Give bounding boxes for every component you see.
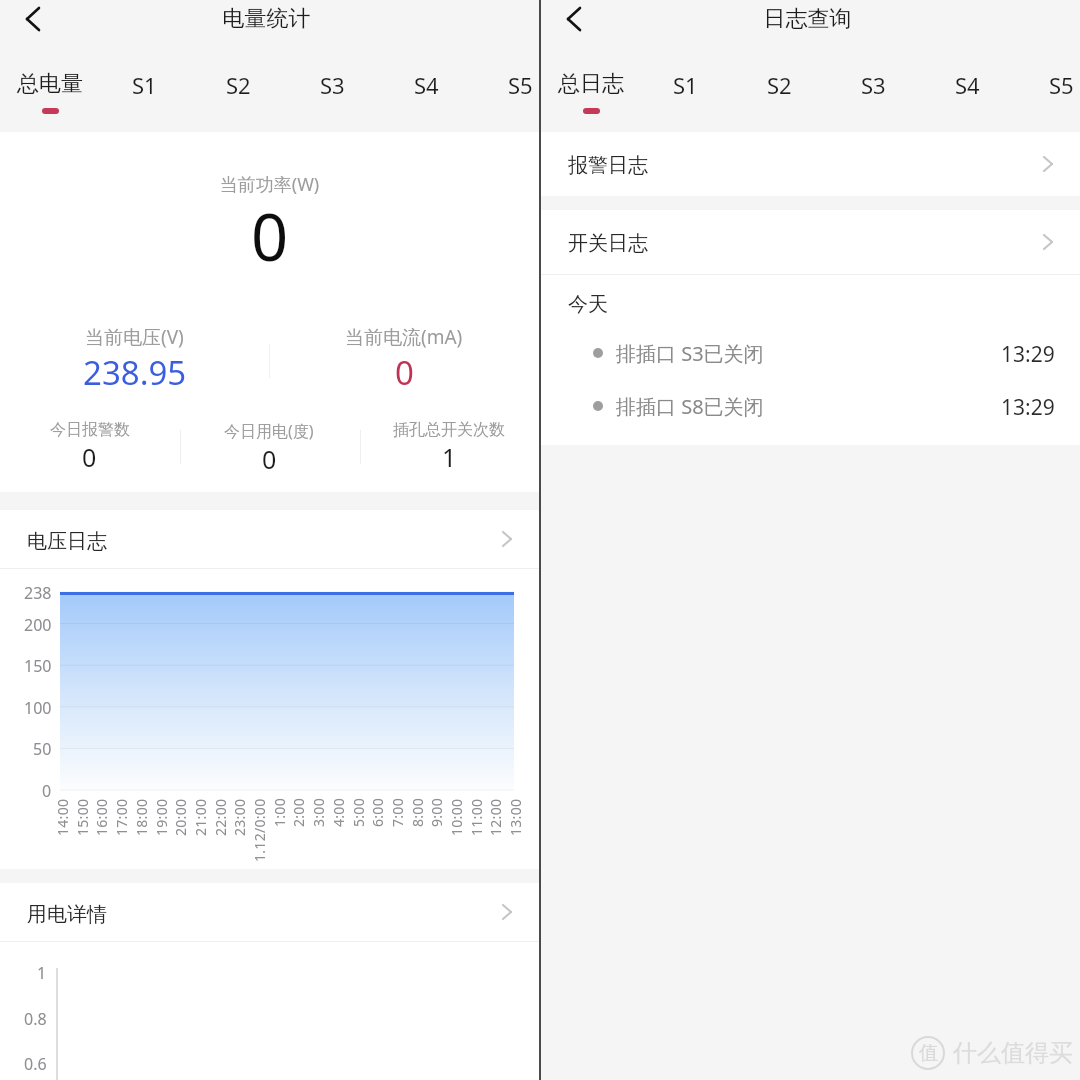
button[interactable]: 电压日志 — [0, 510, 539, 568]
staticText: 16:00 — [92, 798, 111, 836]
button[interactable]: 排插口 S8已关闭 — [541, 393, 1080, 419]
staticText: 7:00 — [388, 798, 407, 827]
staticText: S4 — [414, 70, 439, 100]
staticText: 2:00 — [289, 798, 308, 827]
staticText: 0.6 — [24, 1053, 47, 1075]
button[interactable]: S5 — [1014, 70, 1080, 126]
staticText: 排插口 S8已关闭 — [616, 393, 764, 419]
staticText: 0 — [262, 442, 277, 476]
staticText: 3:00 — [309, 798, 328, 827]
button[interactable]: 用电详情 — [0, 883, 539, 941]
button[interactable]: 报警日志 — [541, 132, 1080, 196]
staticText: 18:00 — [132, 798, 151, 836]
staticText: 14:00 — [53, 798, 72, 836]
button[interactable]: Back — [555, 0, 593, 38]
staticText: 19:00 — [152, 798, 171, 836]
staticText: S2 — [767, 70, 792, 100]
button[interactable]: S1 — [97, 70, 191, 126]
staticText: 8:00 — [408, 798, 427, 827]
staticText: 总日志 — [558, 70, 624, 98]
staticText: 11:00 — [467, 798, 486, 836]
staticText: 238.95 — [83, 350, 187, 395]
staticText: S5 — [508, 70, 533, 100]
button[interactable]: S4 — [379, 70, 473, 126]
staticText: 0 — [0, 192, 539, 281]
staticText: 电压日志 — [27, 529, 107, 554]
staticText: 15:00 — [73, 798, 92, 836]
staticText: 今日用电(度) — [224, 420, 314, 442]
staticText: 10:00 — [447, 798, 466, 836]
staticText: 200 — [24, 614, 52, 636]
staticText: 用电详情 — [27, 902, 107, 927]
staticText: 100 — [24, 697, 52, 719]
button[interactable]: 总电量 — [3, 70, 97, 126]
staticText: S4 — [955, 70, 980, 100]
staticText: 1:00 — [270, 798, 289, 827]
staticText: 日志查询 — [538, 5, 1077, 33]
staticText: 5:00 — [349, 798, 368, 827]
staticText: 22:00 — [211, 798, 230, 836]
button[interactable]: S3 — [285, 70, 379, 126]
staticText: 1.12/0:00 — [250, 798, 269, 862]
staticText: 20:00 — [171, 798, 190, 836]
staticText: 21:00 — [191, 798, 210, 836]
staticText: 值 — [919, 1041, 938, 1065]
button[interactable]: S4 — [920, 70, 1014, 126]
staticText: 150 — [24, 655, 52, 677]
staticText: 开关日志 — [568, 231, 648, 256]
staticText: 9:00 — [427, 798, 446, 827]
staticText: 13:29 — [1001, 393, 1055, 419]
staticText: 当前功率(W) — [0, 172, 539, 197]
button[interactable]: S2 — [191, 70, 285, 126]
staticText: 13:29 — [1001, 340, 1055, 366]
staticText: 排插口 S3已关闭 — [616, 340, 764, 366]
staticText: 17:00 — [112, 798, 131, 836]
staticText: 今天 — [568, 292, 608, 317]
button[interactable]: 排插口 S3已关闭 — [541, 340, 1080, 366]
staticText: 电量统计 — [0, 5, 536, 33]
staticText: 当前电压(V) — [85, 324, 184, 350]
button[interactable]: S3 — [826, 70, 920, 126]
button[interactable]: S5 — [473, 70, 567, 126]
staticText: 1 — [442, 440, 457, 474]
staticText: S3 — [861, 70, 886, 100]
staticText: S1 — [673, 70, 698, 100]
staticText: S1 — [132, 70, 157, 100]
button[interactable]: 开关日志 — [541, 210, 1080, 274]
staticText: 4:00 — [329, 798, 348, 827]
staticText: S3 — [320, 70, 345, 100]
button[interactable]: S1 — [638, 70, 732, 126]
button[interactable]: 总日志 — [544, 70, 638, 126]
staticText: 50 — [33, 738, 52, 760]
staticText: S5 — [1049, 70, 1074, 100]
staticText: 什么值得买 — [953, 1038, 1073, 1068]
staticText: S2 — [226, 70, 251, 100]
staticText: 报警日志 — [568, 153, 648, 178]
staticText: 0.8 — [24, 1008, 47, 1030]
staticText: 238 — [24, 582, 52, 604]
staticText: 23:00 — [230, 798, 249, 836]
staticText: 0 — [395, 350, 414, 395]
button[interactable]: Back — [14, 0, 52, 38]
staticText: 0 — [42, 780, 52, 802]
staticText: 6:00 — [368, 798, 387, 827]
staticText: 13:00 — [506, 798, 525, 836]
staticText: 0 — [82, 440, 97, 474]
button[interactable]: S2 — [732, 70, 826, 126]
staticText: 12:00 — [486, 798, 505, 836]
staticText: 1 — [37, 962, 47, 984]
staticText: 当前电流(mA) — [345, 324, 463, 350]
staticText: 总电量 — [17, 70, 83, 98]
staticText: 插孔总开关次数 — [393, 420, 505, 440]
staticText: 今日报警数 — [50, 420, 130, 440]
